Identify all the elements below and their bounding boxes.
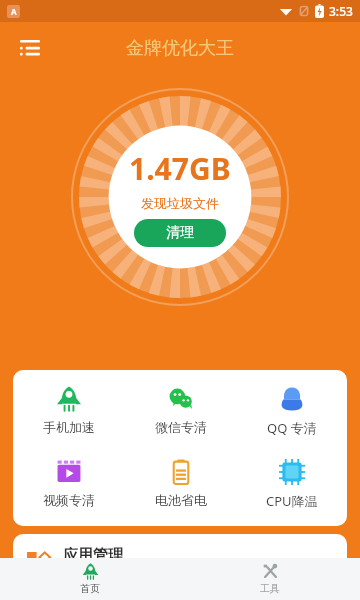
staticText: 电池省电	[155, 492, 207, 508]
button[interactable]: CPU降温	[236, 455, 347, 514]
button[interactable]: 工具	[180, 558, 360, 600]
staticText: 3:53	[329, 3, 353, 19]
staticText: 微信专清	[155, 419, 207, 435]
staticText: 金牌优化大王	[126, 37, 234, 60]
button[interactable]: 应用管理	[13, 534, 347, 594]
button[interactable]: QQ 专清	[236, 382, 347, 441]
staticText: QQ 专清	[267, 419, 317, 437]
staticText: 查看并卸载不常用的应用	[63, 568, 184, 582]
button[interactable]: Menu	[10, 28, 50, 68]
staticText: 清理	[166, 224, 194, 242]
staticText: A	[11, 6, 17, 17]
staticText: CPU降温	[266, 492, 318, 510]
staticText: 首页	[80, 582, 100, 595]
button[interactable]: 微信专清	[125, 382, 236, 439]
staticText: 手机加速	[43, 419, 95, 435]
button[interactable]: 清理	[134, 219, 226, 247]
button[interactable]: 视频专清	[13, 455, 125, 512]
button[interactable]: 电池省电	[125, 455, 236, 512]
button[interactable]: 手机加速	[13, 382, 125, 439]
staticText: 1.47GB	[129, 148, 231, 189]
staticText: 发现垃圾文件	[141, 195, 219, 211]
staticText: 工具	[260, 582, 280, 595]
staticText: 应用管理	[63, 546, 123, 565]
button[interactable]: 首页	[0, 558, 180, 600]
staticText: 视频专清	[43, 492, 95, 508]
